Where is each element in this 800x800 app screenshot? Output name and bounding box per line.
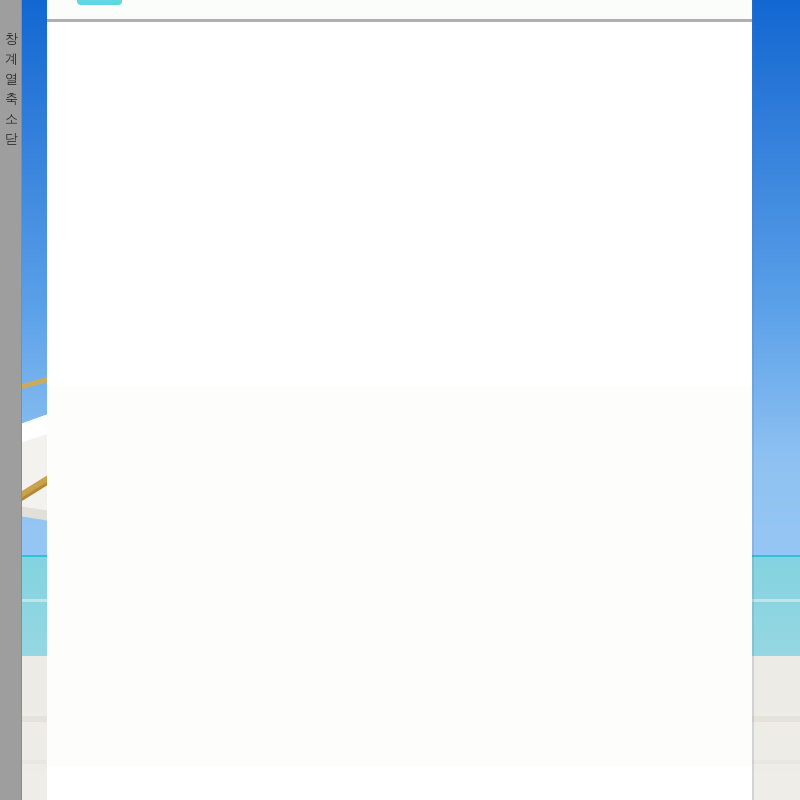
staticText: 축 <box>5 90 18 106</box>
staticText: 계 <box>5 50 18 66</box>
button[interactable]: Toolbar action <box>77 0 122 5</box>
button[interactable]: Sidebar <box>0 0 22 800</box>
staticText: 창 <box>5 30 18 46</box>
staticText: 열 <box>5 70 18 86</box>
staticText: 닫 <box>5 130 18 146</box>
staticText: 소 <box>5 110 18 126</box>
